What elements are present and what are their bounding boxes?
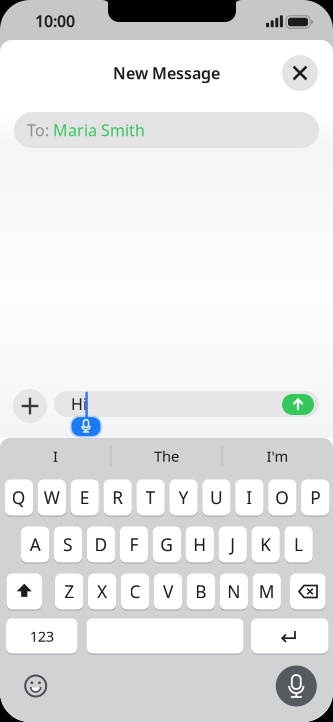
button[interactable]: M [253, 573, 281, 610]
button[interactable]: I'm [227, 442, 327, 470]
staticText: L [294, 533, 303, 556]
staticText: Q [12, 486, 26, 509]
button[interactable]: P [301, 479, 329, 516]
button[interactable]: F [120, 526, 148, 563]
button[interactable]: G [153, 526, 181, 563]
button[interactable]: U [202, 479, 231, 516]
button[interactable]: Space [86, 618, 243, 654]
staticText: F [129, 533, 138, 556]
button[interactable]: I [235, 479, 263, 516]
staticText: K [260, 533, 271, 556]
staticText: I [53, 446, 58, 466]
button[interactable]: Q [5, 479, 33, 516]
button[interactable]: Y [169, 479, 198, 516]
button[interactable]: Dictation [69, 416, 102, 438]
staticText: Z [64, 580, 74, 603]
button[interactable]: B [187, 573, 215, 610]
staticText: I'm [266, 446, 288, 466]
staticText: Y [178, 486, 188, 509]
button[interactable]: X [88, 573, 116, 610]
button[interactable]: Shift [6, 573, 42, 610]
button[interactable]: E [71, 479, 99, 516]
staticText: M [259, 580, 275, 603]
staticText: B [195, 580, 206, 603]
staticText: New Message [113, 62, 220, 84]
button[interactable]: To: [14, 112, 319, 148]
staticText: P [310, 486, 320, 509]
staticText: 123 [30, 626, 54, 646]
staticText: T [146, 486, 156, 509]
staticText: C [129, 580, 140, 603]
button[interactable]: Send [282, 394, 314, 415]
staticText: I [246, 486, 252, 509]
staticText: To: [27, 119, 53, 141]
staticText: X [97, 580, 107, 603]
staticText: A [30, 533, 41, 556]
button[interactable]: 123 [6, 618, 77, 654]
button[interactable]: L [284, 526, 313, 563]
button[interactable]: T [136, 479, 165, 516]
staticText: V [163, 580, 173, 603]
button[interactable]: Emoji [21, 671, 51, 701]
staticText: H [193, 533, 206, 556]
button[interactable]: Return [251, 618, 328, 654]
staticText: E [80, 486, 90, 509]
staticText: U [210, 486, 223, 509]
staticText: R [112, 486, 123, 509]
button[interactable]: W [38, 479, 66, 516]
button[interactable]: Z [55, 573, 83, 610]
staticText: The [154, 446, 179, 466]
button[interactable]: Add attachment [13, 389, 47, 423]
button[interactable]: Close [282, 55, 318, 91]
staticText: D [94, 533, 107, 556]
button[interactable]: C [121, 573, 149, 610]
button[interactable]: R [103, 479, 132, 516]
button[interactable]: Hi [54, 391, 319, 417]
staticText: 10:00 [35, 10, 75, 32]
button[interactable]: O [268, 479, 296, 516]
staticText: O [275, 486, 289, 509]
button[interactable]: I [5, 442, 105, 470]
button[interactable]: Delete [290, 573, 325, 610]
button[interactable]: N [220, 573, 248, 610]
staticText: S [63, 533, 73, 556]
button[interactable]: S [54, 526, 82, 563]
staticText: G [160, 533, 173, 556]
staticText: J [230, 533, 235, 556]
button[interactable]: Dictate [276, 665, 317, 706]
button[interactable]: D [87, 526, 115, 563]
staticText: Maria Smith [53, 119, 145, 141]
button[interactable]: A [21, 526, 49, 563]
button[interactable]: H [186, 526, 214, 563]
button[interactable]: K [251, 526, 280, 563]
staticText: Hi [71, 393, 87, 415]
button[interactable]: J [219, 526, 247, 563]
button[interactable]: V [154, 573, 182, 610]
staticText: W [44, 486, 60, 509]
staticText: N [227, 580, 240, 603]
button[interactable]: The [116, 442, 216, 470]
